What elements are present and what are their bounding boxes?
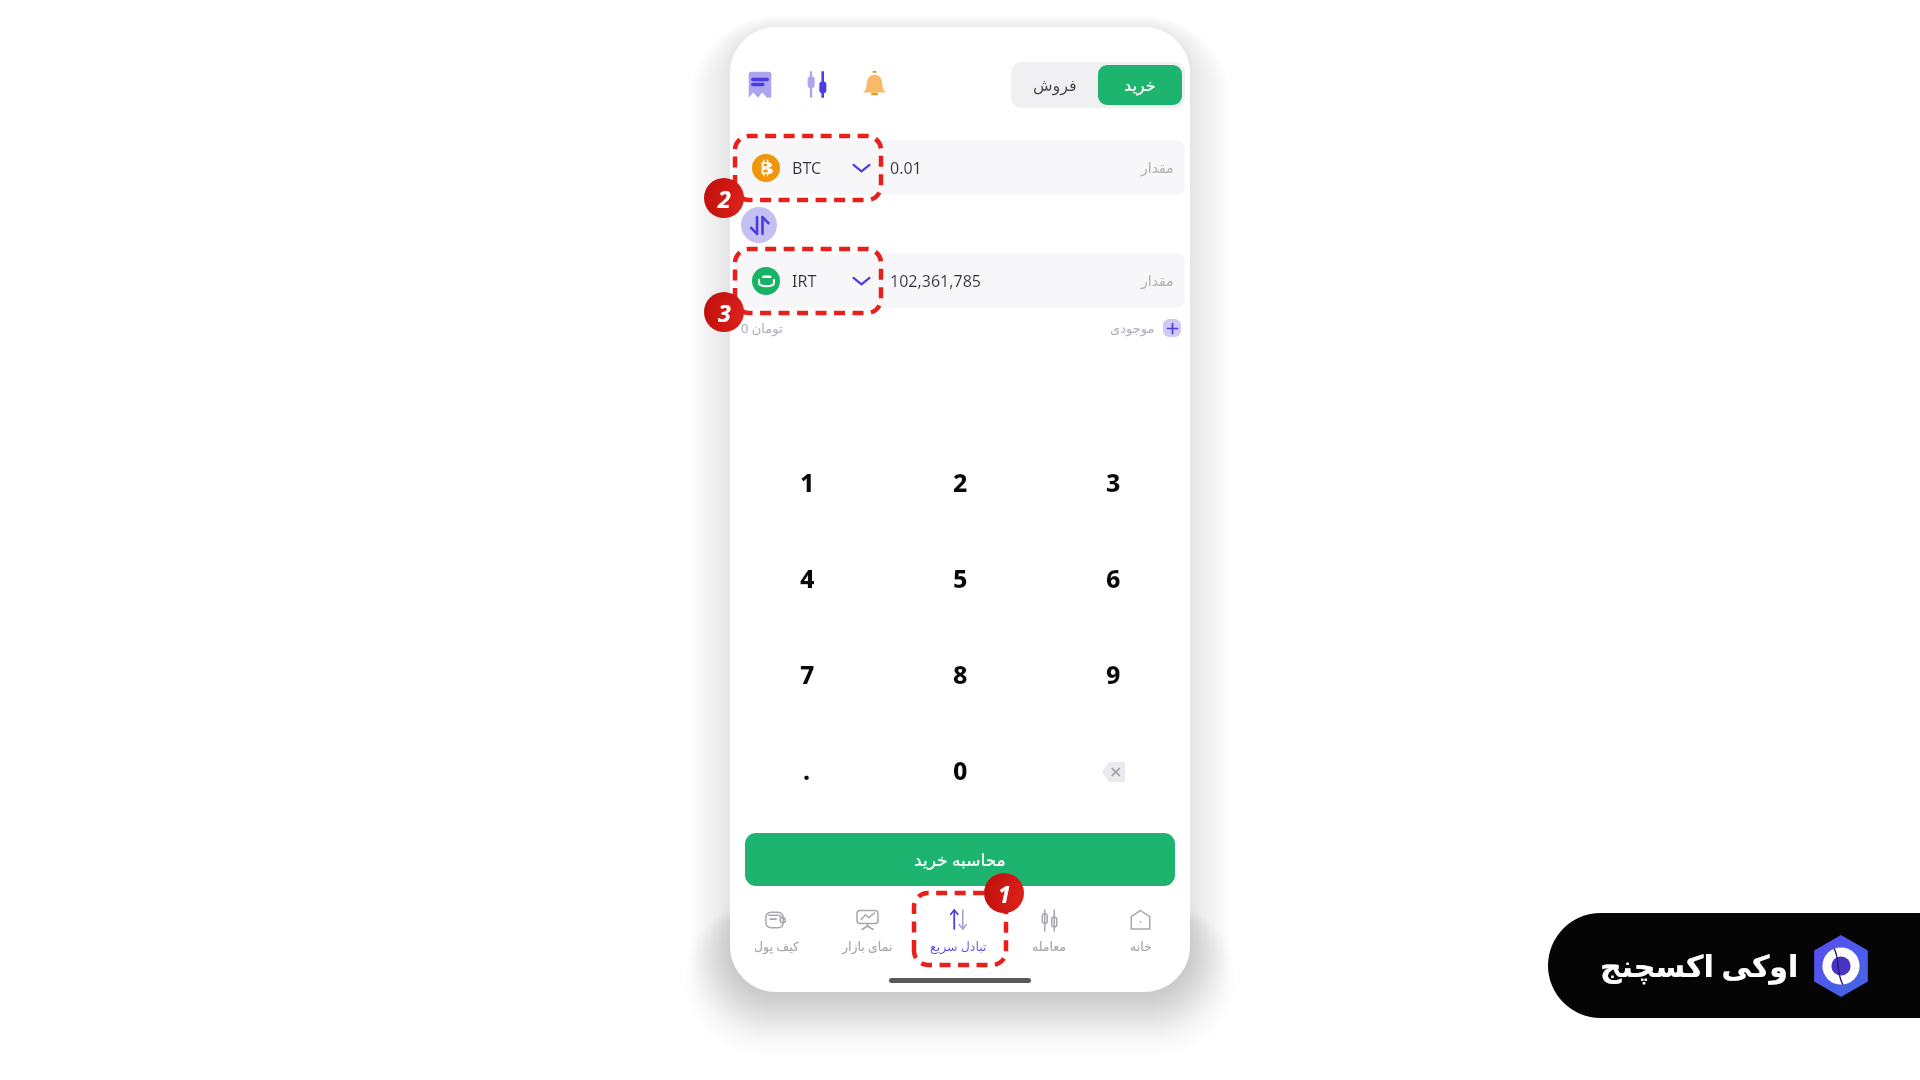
staticText: خرید bbox=[1124, 76, 1156, 95]
staticText: 3 bbox=[718, 297, 731, 328]
button[interactable]: کیف پول bbox=[730, 895, 822, 967]
staticText: فروش bbox=[1033, 76, 1077, 95]
staticText: محاسبه خرید bbox=[914, 848, 1006, 871]
button[interactable]: Add bbox=[1163, 319, 1181, 337]
staticText: 2 bbox=[953, 465, 968, 499]
button[interactable]: Backspace bbox=[1037, 724, 1190, 820]
button[interactable]: IRT bbox=[735, 253, 880, 308]
button[interactable]: Orders bbox=[740, 64, 780, 104]
staticText: کیف پول bbox=[754, 938, 799, 955]
button[interactable]: فروش bbox=[1011, 62, 1098, 108]
staticText: IRT bbox=[792, 270, 817, 292]
button[interactable]: 0 bbox=[884, 724, 1037, 820]
button[interactable]: 7 bbox=[730, 628, 884, 724]
button[interactable]: خانه bbox=[1095, 895, 1186, 967]
staticText: 5 bbox=[953, 561, 968, 595]
staticText: معامله bbox=[1032, 939, 1067, 954]
button[interactable]: . bbox=[730, 724, 884, 820]
staticText: BTC bbox=[792, 157, 822, 179]
staticText: 4 bbox=[800, 561, 815, 595]
button[interactable]: 3 bbox=[1037, 436, 1190, 532]
staticText: . bbox=[803, 753, 811, 787]
button[interactable]: نمای بازار bbox=[822, 895, 913, 967]
button[interactable]: 1 bbox=[730, 436, 884, 532]
button[interactable]: 6 bbox=[1037, 532, 1190, 628]
staticText: 6 bbox=[1106, 561, 1121, 595]
button[interactable]: 5 bbox=[884, 532, 1037, 628]
button[interactable]: BTC bbox=[735, 140, 880, 195]
button[interactable]: معامله bbox=[1004, 895, 1095, 967]
button[interactable]: Swap bbox=[741, 207, 777, 243]
staticText: خانه bbox=[1130, 939, 1152, 954]
button[interactable]: Chart bbox=[797, 64, 837, 104]
button[interactable]: 4 bbox=[730, 532, 884, 628]
staticText: 8 bbox=[953, 657, 968, 691]
staticText: 2 bbox=[718, 183, 731, 214]
button[interactable]: Notifications bbox=[854, 64, 894, 104]
staticText: 0.01 bbox=[890, 157, 922, 179]
staticText: 9 bbox=[1106, 657, 1121, 691]
staticText: 1 bbox=[998, 878, 1011, 909]
button[interactable]: تبادل سریع bbox=[913, 895, 1004, 967]
staticText: نمای بازار bbox=[842, 938, 893, 955]
button[interactable]: 9 bbox=[1037, 628, 1190, 724]
staticText: 0 تومان bbox=[741, 319, 783, 337]
button[interactable]: خرید bbox=[1098, 65, 1182, 105]
staticText: 3 bbox=[1106, 465, 1121, 499]
staticText: 102,361,785 bbox=[890, 270, 981, 292]
staticText: 1 bbox=[800, 465, 815, 499]
staticText: 7 bbox=[800, 657, 815, 691]
staticText: 0 bbox=[953, 753, 968, 787]
staticText: تبادل سریع bbox=[930, 938, 987, 955]
button[interactable]: 2 bbox=[884, 436, 1037, 532]
button[interactable]: محاسبه خرید bbox=[745, 833, 1175, 886]
staticText: موجودی bbox=[1110, 321, 1155, 336]
staticText: اوکی اکسچنج bbox=[1600, 945, 1799, 986]
button[interactable]: 8 bbox=[884, 628, 1037, 724]
staticText: مقدار bbox=[1141, 160, 1174, 176]
staticText: مقدار bbox=[1141, 273, 1174, 289]
